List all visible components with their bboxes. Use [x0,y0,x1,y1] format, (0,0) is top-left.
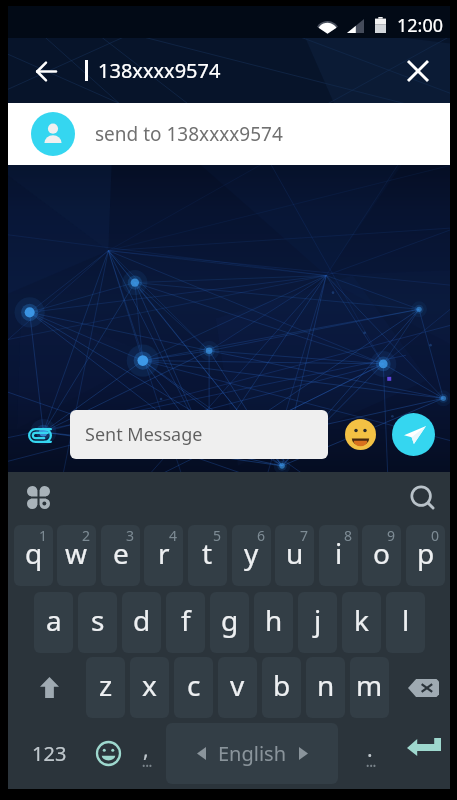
staticText: a [46,601,62,639]
staticText: English [218,740,287,767]
button[interactable]: Search [403,478,441,516]
staticText: k [354,601,369,639]
button[interactable]: 5 [188,525,227,586]
button[interactable]: n [306,657,345,718]
staticText: send to 138xxxx9574 [95,121,283,147]
button[interactable]: send to 138xxxx9574 [8,103,450,165]
staticText: o [373,534,390,572]
staticText: q [25,534,43,572]
staticText: c [187,666,201,704]
staticText: ••• [366,759,377,771]
staticText: d [133,601,151,639]
staticText: 9 [387,526,396,545]
button[interactable]: 0 [406,525,445,586]
staticText: ••• [142,759,153,771]
button[interactable]: s [78,592,117,653]
button[interactable]: Attach [23,418,57,452]
button[interactable]: a [34,592,73,653]
staticText: , [143,735,149,764]
button[interactable]: h [254,592,293,653]
staticText: 7 [300,526,309,545]
button[interactable]: 9 [362,525,401,586]
button[interactable]: l [386,592,425,653]
staticText: t [202,534,213,572]
button[interactable]: 1 [14,525,53,586]
button[interactable]: g [210,592,249,653]
staticText: i [335,534,343,572]
staticText: 1 [39,526,48,545]
button[interactable]: j [298,592,337,653]
button[interactable]: 8 [319,525,358,586]
button[interactable]: 7 [275,525,314,586]
staticText: e [113,534,129,572]
staticText: m [356,666,383,704]
staticText: . [367,735,373,764]
button[interactable]: 3 [101,525,140,586]
staticText: Sent Message [85,422,203,447]
button[interactable]: Enter [391,723,454,784]
button[interactable]: Emoji [345,419,376,450]
staticText: v [230,666,245,704]
button[interactable]: Sent Message [70,410,328,459]
button[interactable]: 2 [57,525,96,586]
button[interactable]: Emoji keyboard [84,723,132,784]
staticText: 123 [32,740,67,767]
staticText: w [65,534,88,572]
staticText: s [91,601,105,639]
staticText: z [99,666,113,704]
staticText: x [142,666,157,704]
staticText: u [286,534,304,572]
staticText: g [221,601,239,639]
staticText: 4 [169,526,178,545]
staticText: 5 [213,526,222,545]
button[interactable]: , [128,723,164,784]
button[interactable]: English [166,723,338,784]
staticText: b [273,666,291,704]
staticText: y [244,534,259,572]
staticText: p [417,534,435,572]
staticText: 2 [82,526,91,545]
button[interactable]: b [262,657,301,718]
button[interactable]: m [350,657,389,718]
staticText: f [181,601,191,639]
staticText: 8 [344,526,353,545]
button[interactable]: 6 [232,525,271,586]
button[interactable]: Shift [14,657,77,718]
button[interactable]: . [352,723,388,784]
staticText: 6 [257,526,266,545]
button[interactable]: Close [396,49,440,93]
button[interactable]: k [342,592,381,653]
staticText: 12:00 [397,13,444,38]
button[interactable]: d [122,592,161,653]
staticText: h [265,601,283,639]
button[interactable]: 4 [144,525,183,586]
staticText: n [317,666,335,704]
staticText: l [402,601,410,639]
button[interactable]: 123 [14,723,84,784]
button[interactable]: Back [22,47,70,95]
button[interactable]: z [86,657,125,718]
staticText: 3 [126,526,135,545]
staticText: r [158,534,170,572]
button[interactable]: Stickers [19,478,57,516]
button[interactable]: c [174,657,213,718]
button[interactable]: v [218,657,257,718]
button[interactable]: Backspace [392,657,454,718]
button[interactable]: x [130,657,169,718]
button[interactable]: Send [392,413,435,456]
staticText: 0 [431,526,440,545]
staticText: 138xxxx9574 [98,57,221,84]
staticText: j [314,601,322,639]
button[interactable]: f [166,592,205,653]
